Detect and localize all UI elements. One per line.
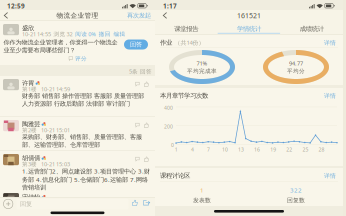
staticText: 回复 [20,200,32,208]
staticText: 宋佳怡 [22,193,40,201]
button[interactable]: Add attachment [3,199,13,209]
staticText: 发表数 [193,197,211,204]
staticText: 1:17 [163,2,177,10]
staticText: 回答 [130,41,142,48]
button[interactable]: Like [142,79,151,89]
button[interactable]: 回答 [124,39,148,49]
staticText: 盛欣 [22,24,34,32]
button[interactable]: Comment [133,121,142,129]
staticText: 回复数 [287,197,305,204]
staticText: 采购部、财务部、销售部、质量管理部、客服部、运输管理部、仓库管理部 [22,133,142,148]
button[interactable]: 详情 [322,170,338,181]
staticText: 10 [222,146,228,153]
staticText: 浏览 32 [54,30,73,38]
button[interactable]: 详情 [322,90,338,101]
button[interactable]: Like [131,199,139,207]
staticText: 胡倩倩 [22,154,40,162]
staticText: 作业 [160,38,172,47]
staticText: 撤回 [99,30,111,38]
button[interactable]: 评分 [65,53,90,64]
button[interactable]: 学情统计 [218,21,280,35]
staticText: （共14份） [174,38,204,46]
staticText: 7 [207,146,210,153]
staticText: 322 [290,186,302,194]
button[interactable]: 撤回 [99,30,111,38]
staticText: 物流企业管理 [56,11,98,20]
staticText: 16 [254,146,260,153]
staticText: 0 [171,142,174,148]
button[interactable]: Like [142,154,151,164]
staticText: 详情 [324,92,336,99]
staticText: 第3楼 [22,160,37,168]
staticText: 第1楼 [22,85,37,93]
staticText: 19 [270,146,276,153]
button[interactable]: 回复 [16,199,128,209]
staticText: 200 [164,123,173,130]
staticText: 阅读 0% [75,30,96,38]
staticText: 5条 回答 [129,67,152,75]
staticText: 10-21 15:03 [41,160,70,168]
staticText: 1.运营部门2、网点建设部 3.项目管理中心 3.财务部 4.信息化部门 5.仓… [22,167,150,191]
staticText: 94.77 [289,59,303,67]
button[interactable]: Share [142,198,151,207]
staticText: 平均完成率 [187,67,217,75]
staticText: 成绩统计 [300,25,324,33]
staticText: 课堂报告 [174,25,198,33]
staticText: 许胃 [22,79,34,87]
staticText: 4 [191,146,194,153]
staticText: 71% [196,59,207,67]
button[interactable]: Back [159,10,171,21]
staticText: 本月章节学习次数 [160,91,208,100]
button[interactable]: 成绩统计 [280,21,343,35]
button[interactable]: 阅读 0% [75,30,96,38]
staticText: 编辑 [113,30,125,38]
staticText: 1 [200,186,204,194]
button[interactable]: Like [142,120,151,130]
staticText: 10-21 14:59 [41,85,70,93]
staticText: 10-21 14:55 [22,30,51,38]
staticText: 课程讨论区 [160,171,190,180]
staticText: 第2楼 [22,126,37,134]
staticText: 陶雅芸 [22,120,40,128]
staticText: 161521 [237,11,261,20]
button[interactable]: Comment [133,155,142,163]
staticText: 你作为物流企业管理者，你觉得一个物流企业至少需要布局哪些部门？ [3,38,117,54]
staticText: 22 [286,146,292,153]
button[interactable]: 编辑 [113,30,125,38]
button[interactable]: 322 [249,186,343,204]
staticText: 400 [164,104,173,111]
button[interactable]: Back [0,10,12,21]
staticText: 详情 [324,172,336,179]
button[interactable]: Comment [133,80,142,88]
button[interactable]: 课堂报告 [155,21,218,35]
staticText: 13 [238,146,244,153]
staticText: 财务部 销售部 操作管理部 客服部 质量管理部 人力资源部 行政后勤部 法律部 … [22,92,144,107]
staticText: 1 [175,146,178,153]
button[interactable]: 再次发起 [123,9,155,22]
staticText: 评分 [75,55,87,62]
staticText: 再次发起 [127,12,151,19]
staticText: 平均分 [287,67,305,75]
staticText: 28 [318,146,324,153]
staticText: 10-21 15:01 [41,126,70,134]
button[interactable]: 详情 [322,37,338,48]
staticText: 详情 [324,39,336,46]
staticText: 25 [302,146,308,153]
staticText: 学情统计 [237,25,261,33]
button[interactable]: 1 [155,186,249,204]
staticText: 12:59 [7,2,25,10]
